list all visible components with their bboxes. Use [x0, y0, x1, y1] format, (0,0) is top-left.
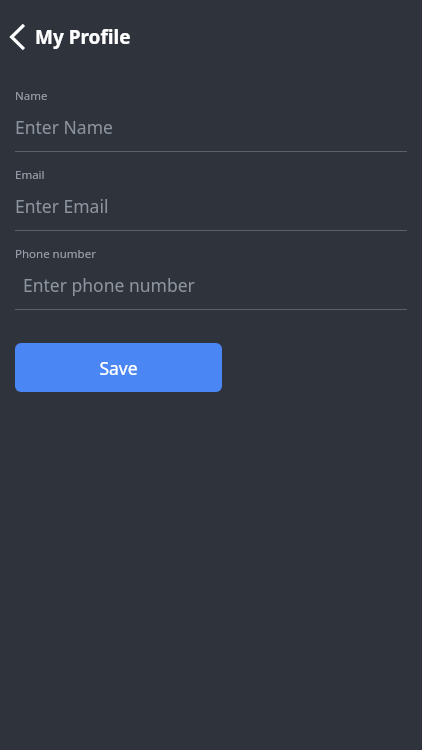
button[interactable]: Enter Name: [15, 115, 407, 139]
staticText: Enter Name: [15, 115, 113, 139]
button[interactable]: Enter Email: [15, 194, 407, 218]
staticText: Save: [99, 356, 138, 380]
button[interactable]: Save: [15, 343, 222, 392]
staticText: Enter Email: [15, 194, 109, 218]
staticText: Email: [15, 167, 45, 183]
staticText: Enter phone number: [23, 273, 195, 297]
button[interactable]: Back: [1, 21, 35, 53]
staticText: Name: [15, 88, 48, 104]
staticText: Phone number: [15, 246, 96, 262]
staticText: My Profile: [35, 24, 131, 50]
button[interactable]: Enter phone number: [15, 273, 407, 297]
